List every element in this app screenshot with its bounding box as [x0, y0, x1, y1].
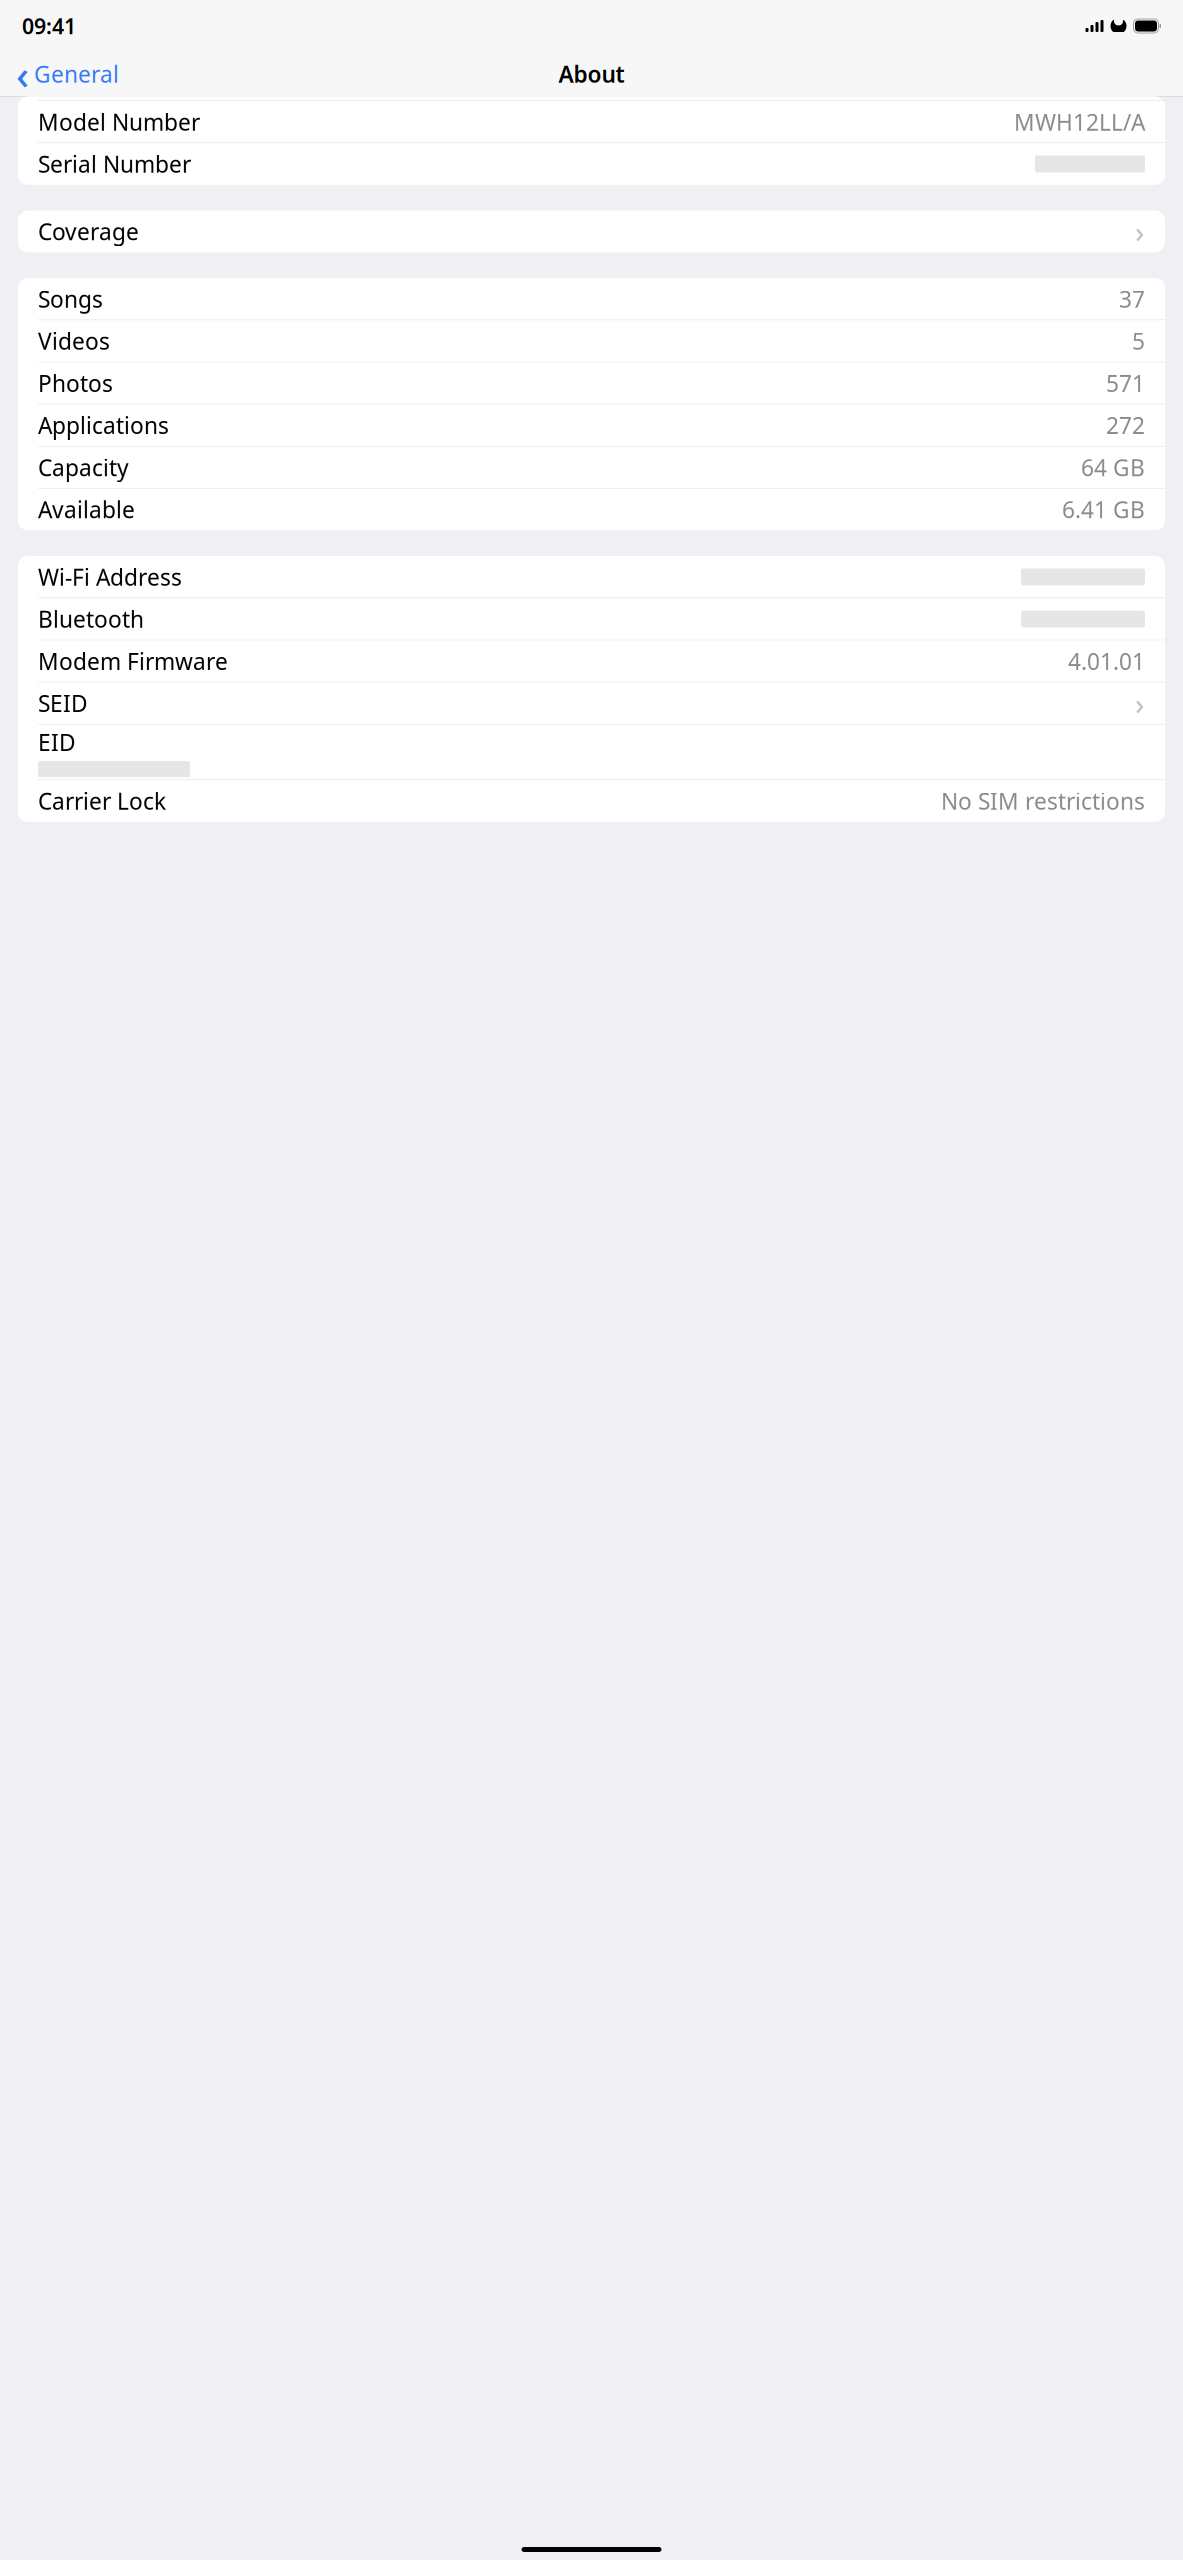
staticText: 5	[1132, 326, 1145, 356]
staticText: Modem Firmware	[38, 646, 228, 676]
staticText: General	[34, 59, 119, 89]
staticText: MWH12LL/A	[1014, 107, 1145, 137]
button[interactable]: EID	[18, 725, 1165, 780]
staticText: Applications	[38, 410, 169, 440]
staticText: EID	[38, 727, 76, 757]
staticText: Wi-Fi Address	[38, 562, 182, 592]
staticText: Serial Number	[38, 149, 191, 179]
staticText: 09:41	[22, 12, 76, 40]
button[interactable]: Available	[18, 489, 1165, 530]
staticText: 571	[1106, 368, 1145, 398]
staticText: Photos	[38, 368, 113, 398]
button[interactable]: Videos	[18, 320, 1165, 362]
button[interactable]: Capacity	[18, 447, 1165, 488]
button[interactable]: Carrier Lock	[18, 780, 1165, 822]
staticText: 6.41 GB	[1062, 494, 1145, 524]
staticText: ›	[1135, 212, 1145, 251]
staticText: Capacity	[38, 452, 129, 482]
button[interactable]: Songs	[18, 278, 1165, 320]
button[interactable]: Serial Number	[18, 143, 1165, 185]
staticText: Model Number	[38, 107, 200, 137]
staticText: Available	[38, 494, 135, 524]
staticText: SEID	[38, 688, 88, 718]
staticText: 4.01.01	[1068, 646, 1145, 676]
staticText: ›	[1135, 684, 1145, 723]
staticText: Videos	[38, 326, 110, 356]
staticText: Coverage	[38, 216, 139, 246]
button[interactable]: ‹	[8, 52, 127, 96]
staticText: 37	[1119, 284, 1145, 314]
button[interactable]: Applications	[18, 404, 1165, 446]
staticText: Songs	[38, 284, 103, 314]
button[interactable]: Coverage	[18, 211, 1165, 252]
button[interactable]: Wi-Fi Address	[18, 556, 1165, 598]
button[interactable]: Modem Firmware	[18, 640, 1165, 682]
staticText: Carrier Lock	[38, 786, 166, 816]
staticText: 272	[1106, 410, 1145, 440]
button[interactable]: Model Number	[18, 101, 1165, 143]
staticText: Bluetooth	[38, 604, 144, 634]
button[interactable]: Photos	[18, 362, 1165, 404]
button[interactable]: Bluetooth	[18, 598, 1165, 640]
staticText: About	[558, 59, 624, 89]
staticText: ‹	[16, 47, 29, 100]
staticText: No SIM restrictions	[941, 786, 1145, 816]
staticText: 64 GB	[1081, 452, 1145, 482]
button[interactable]: SEID	[18, 682, 1165, 724]
